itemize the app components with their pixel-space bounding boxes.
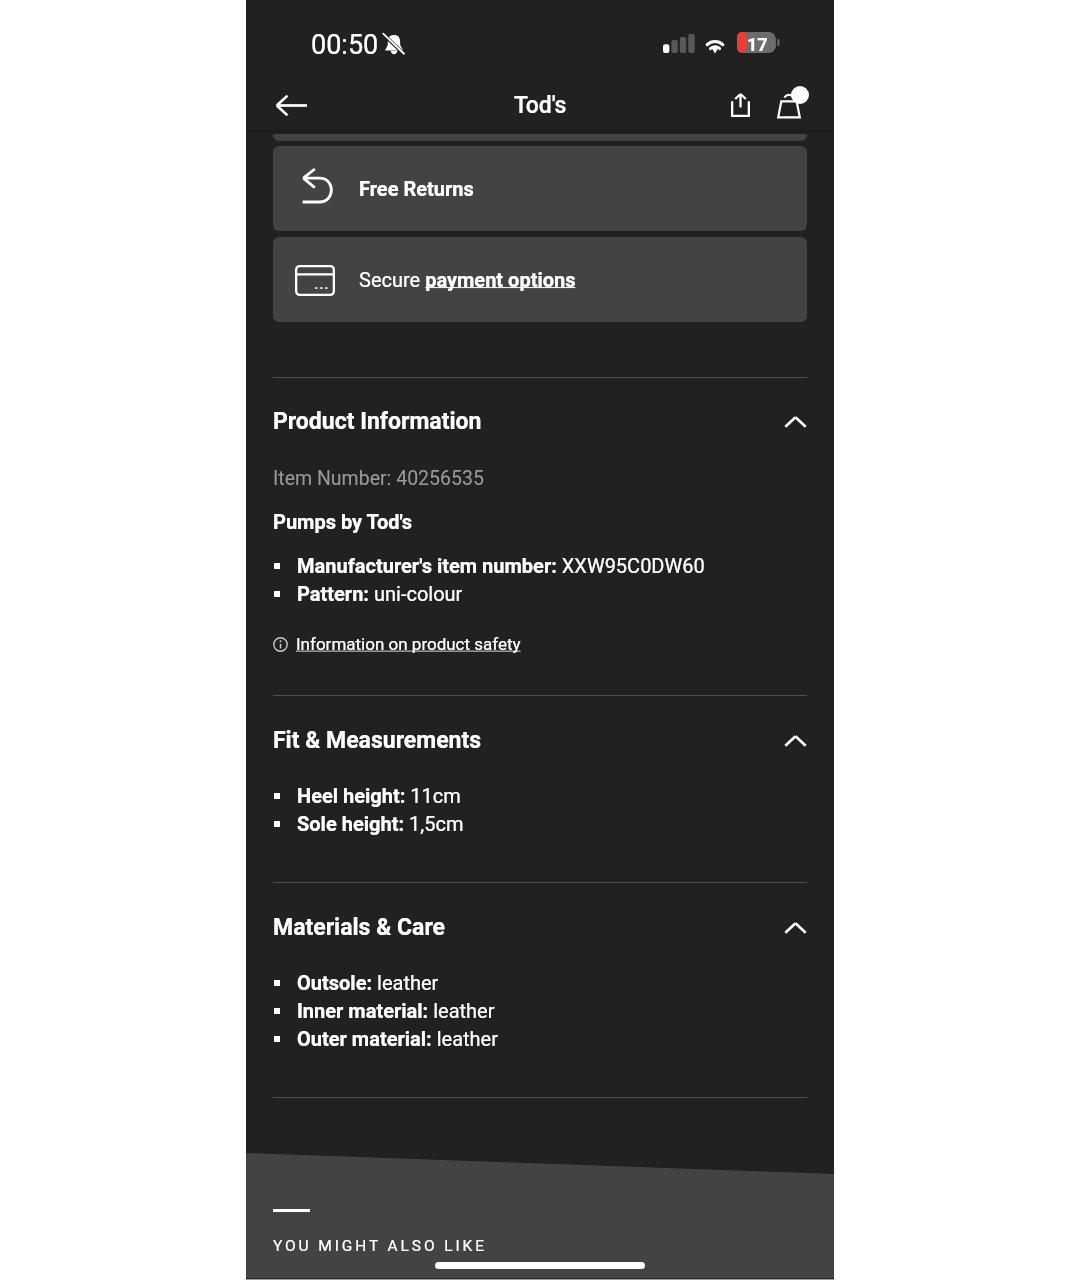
other: Collapse bbox=[784, 735, 807, 747]
staticText: Outsole: leather bbox=[297, 971, 439, 994]
staticText: Product Information bbox=[273, 408, 784, 435]
staticText: Tod's bbox=[514, 92, 567, 119]
staticText: Free Returns bbox=[359, 177, 474, 200]
staticText: 00:50 bbox=[311, 29, 379, 61]
staticText: YOU MIGHT ALSO LIKE bbox=[273, 1237, 487, 1255]
staticText: Pattern: uni-colour bbox=[297, 582, 463, 605]
button[interactable]: Back bbox=[264, 81, 318, 129]
staticText: Heel height: 11cm bbox=[297, 784, 461, 807]
staticText: Pumps by Tod's bbox=[273, 510, 413, 533]
button[interactable]: Secure payment options bbox=[273, 237, 807, 322]
button[interactable]: Shopping bag bbox=[769, 78, 817, 126]
staticText: Secure payment options bbox=[359, 268, 576, 291]
button[interactable]: Information on product safety bbox=[273, 634, 521, 654]
other: Collapse bbox=[784, 922, 807, 934]
staticText: Inner material: leather bbox=[297, 999, 495, 1022]
button[interactable]: Materials & Care bbox=[273, 914, 807, 941]
button[interactable]: Product Information bbox=[273, 408, 807, 435]
button[interactable]: Fit & Measurements bbox=[273, 727, 807, 754]
staticText: Fit & Measurements bbox=[273, 727, 784, 754]
staticText: Sole height: 1,5cm bbox=[297, 812, 464, 835]
button[interactable]: Share bbox=[716, 81, 764, 129]
staticText: Materials & Care bbox=[273, 914, 784, 941]
staticText: Outer material: leather bbox=[297, 1027, 498, 1050]
staticText: 17 bbox=[747, 34, 768, 55]
staticText: Manufacturer's item number: XXW95C0DW60 bbox=[297, 554, 705, 577]
staticText: Item Number: 40256535 bbox=[273, 467, 484, 490]
other: Collapse bbox=[784, 416, 807, 428]
button[interactable]: Free Returns bbox=[273, 146, 807, 231]
staticText: Information on product safety bbox=[296, 634, 521, 654]
